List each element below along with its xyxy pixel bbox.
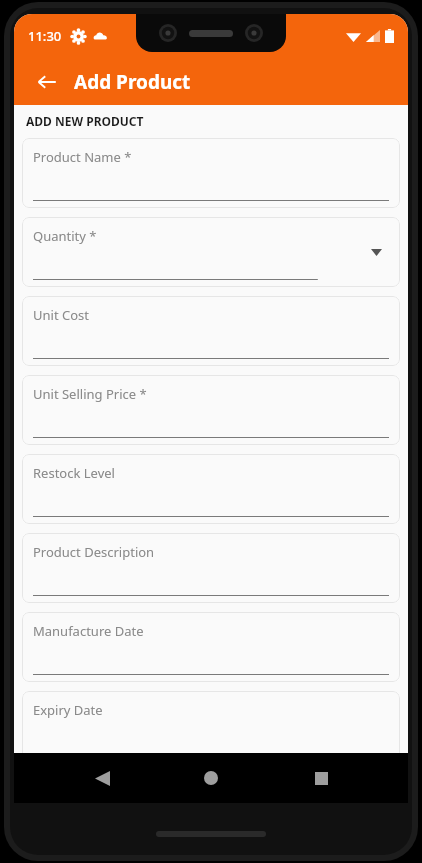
button[interactable]: Quantity * [22, 217, 400, 287]
button[interactable]: Home [189, 756, 233, 800]
staticText: Expiry Date [33, 701, 103, 719]
staticText: Unit Selling Price * [33, 385, 147, 403]
button[interactable]: Product Description [22, 533, 400, 603]
staticText: Manufacture Date [33, 622, 144, 640]
staticText: Add Product [74, 69, 191, 95]
button[interactable]: Unit Cost [22, 296, 400, 366]
button[interactable]: Back [28, 63, 66, 101]
staticText: ADD NEW PRODUCT [26, 113, 144, 129]
button[interactable]: Recent apps [299, 756, 343, 800]
button[interactable]: Product Name * [22, 138, 400, 208]
button[interactable]: Manufacture Date [22, 612, 400, 682]
button[interactable]: Open quantity dropdown [364, 240, 388, 264]
staticText: Product Description [33, 543, 155, 561]
staticText: Restock Level [33, 464, 115, 482]
staticText: Product Name * [33, 148, 132, 166]
staticText: 11:30 [28, 27, 62, 45]
button[interactable]: Back [80, 756, 124, 800]
button[interactable]: Restock Level [22, 454, 400, 524]
button[interactable]: Expiry Date [22, 691, 400, 761]
staticText: Unit Cost [33, 306, 89, 324]
button[interactable]: Unit Selling Price * [22, 375, 400, 445]
staticText: Quantity * [33, 227, 97, 245]
